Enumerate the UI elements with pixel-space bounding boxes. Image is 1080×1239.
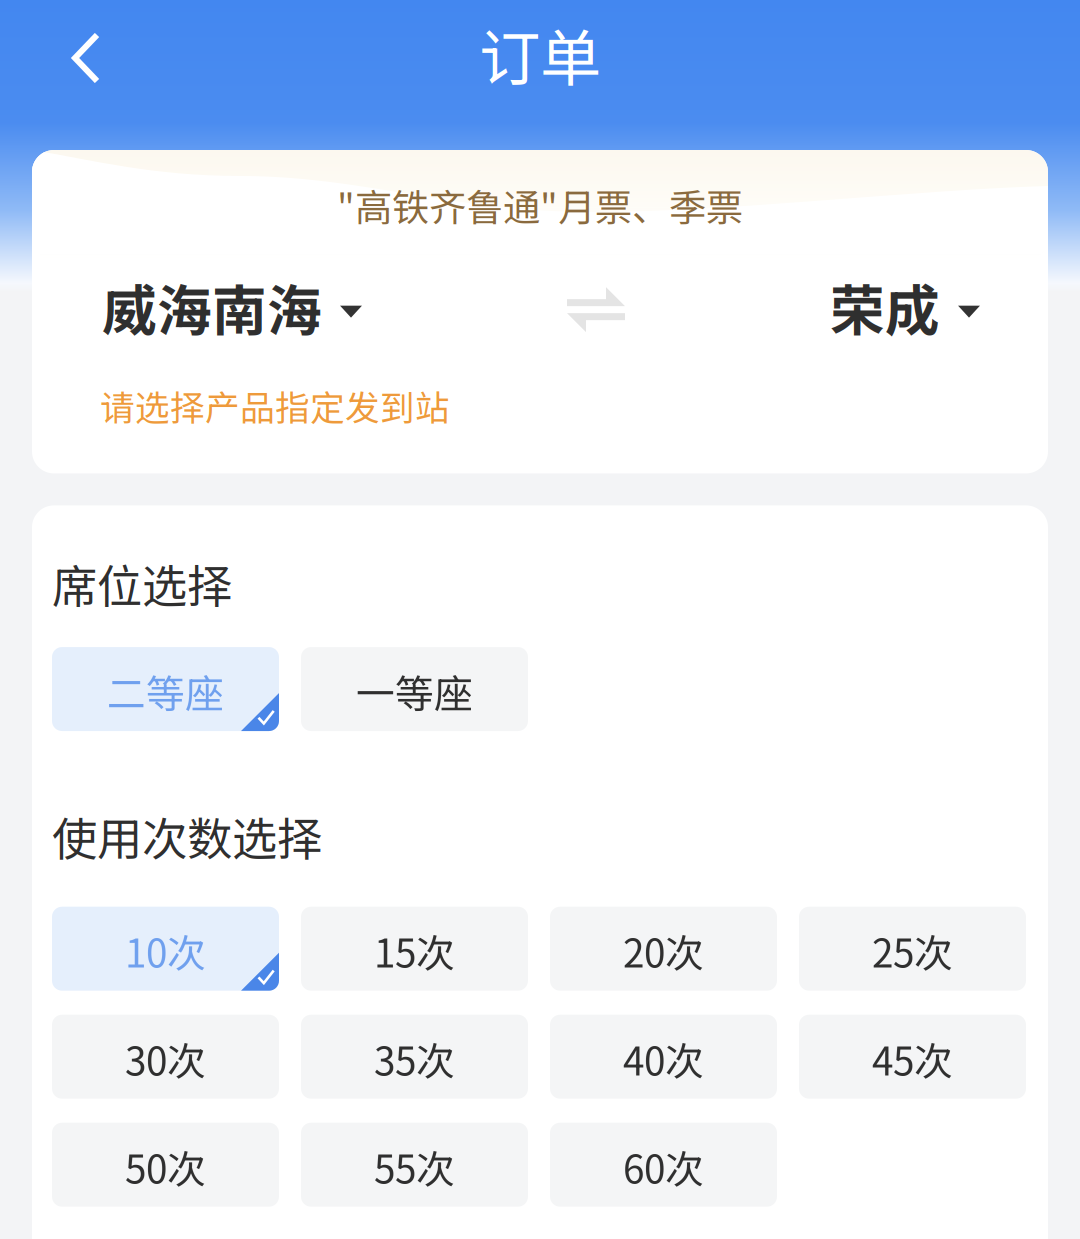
button[interactable]: 20次 [550,907,777,991]
button[interactable]: 60次 [550,1123,777,1207]
button[interactable]: 威海南海 [102,267,362,346]
staticText: 20次 [623,923,704,979]
staticText: "高铁齐鲁通"月票、季票 [337,178,743,232]
button[interactable]: 25次 [799,907,1026,991]
staticText: 10次 [125,923,206,979]
staticText: 使用次数选择 [52,803,322,869]
button[interactable]: 35次 [301,1015,528,1099]
button[interactable]: 55次 [301,1123,528,1207]
staticText: 25次 [872,923,953,979]
staticText: 二等座 [107,663,224,719]
staticText: 40次 [623,1031,704,1087]
staticText: 15次 [374,923,455,979]
staticText: 60次 [623,1139,704,1195]
button[interactable]: Swap stations [567,281,625,332]
staticText: 55次 [374,1139,455,1195]
staticText: 50次 [125,1139,206,1195]
button[interactable]: 30次 [52,1015,279,1099]
button[interactable]: 45次 [799,1015,1026,1099]
button[interactable]: Back [0,0,150,116]
button[interactable]: 荣成 [830,267,980,346]
button[interactable]: 二等座 [52,647,279,731]
staticText: 30次 [125,1031,206,1087]
staticText: 荣成 [830,267,940,346]
staticText: 订单 [479,10,601,98]
button[interactable]: 50次 [52,1123,279,1207]
staticText: 一等座 [356,663,473,719]
staticText: 35次 [374,1031,455,1087]
staticText: 威海南海 [102,267,322,346]
button[interactable]: 一等座 [301,647,528,731]
button[interactable]: 10次 [52,907,279,991]
staticText: 请选择产品指定发到站 [100,380,450,430]
button[interactable]: 40次 [550,1015,777,1099]
staticText: 席位选择 [52,550,232,616]
button[interactable]: 15次 [301,907,528,991]
staticText: 45次 [872,1031,953,1087]
